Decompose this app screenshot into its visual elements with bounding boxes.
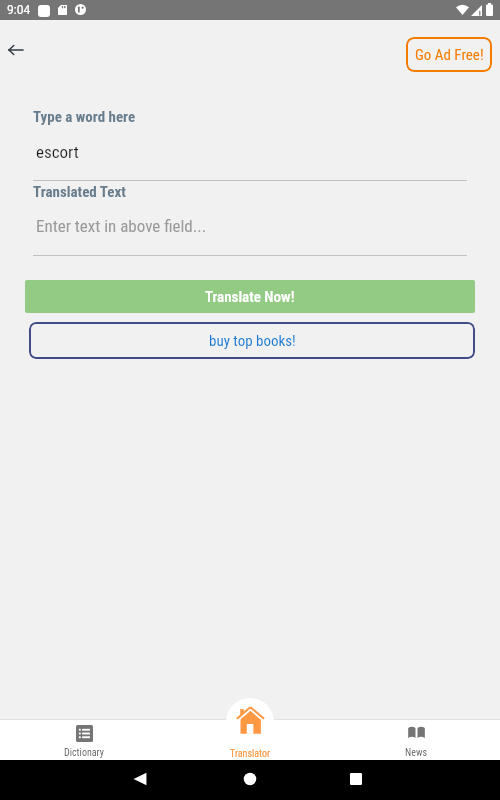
button[interactable]: Home [239, 768, 261, 790]
staticText: Dictionary [64, 747, 104, 759]
staticText: Enter text in above field... [36, 216, 207, 236]
button[interactable]: Recent apps [345, 768, 367, 790]
button[interactable]: Translate Now! [25, 280, 475, 313]
button[interactable]: Dictionary [29, 720, 139, 760]
button[interactable]: Back [0, 28, 32, 71]
button[interactable]: Translator [210, 746, 290, 761]
staticText: 9:04 [7, 3, 31, 17]
staticText: Go Ad Free! [415, 46, 484, 64]
staticText: Translator [230, 748, 270, 760]
staticText: buy top books! [209, 332, 296, 350]
staticText: escort [36, 142, 79, 162]
staticText: Type a word here [33, 108, 136, 126]
button[interactable]: buy top books! [29, 322, 475, 359]
staticText: Translated Text [33, 183, 126, 201]
button[interactable]: News [361, 720, 471, 760]
staticText: Translate Now! [205, 288, 295, 306]
staticText: News [405, 747, 427, 759]
button[interactable]: Translator [226, 698, 274, 746]
button[interactable]: Back [129, 768, 151, 790]
button[interactable]: Go Ad Free! [406, 37, 492, 72]
